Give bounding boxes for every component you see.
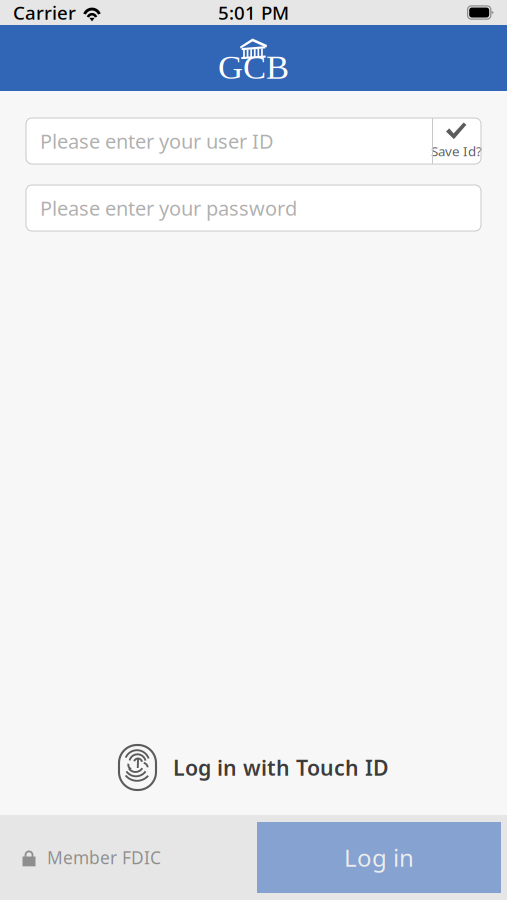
- staticText: Save Id?: [431, 142, 482, 160]
- staticText: Log in: [344, 842, 414, 873]
- staticText: GCB: [218, 48, 289, 86]
- button[interactable]: Log in: [257, 822, 501, 893]
- staticText: Member FDIC: [47, 846, 161, 869]
- staticText: Log in with Touch ID: [173, 753, 389, 782]
- button[interactable]: Log in with Touch ID: [112, 740, 395, 795]
- staticText: Carrier: [13, 0, 76, 25]
- staticText: Please enter your user ID: [40, 128, 274, 154]
- staticText: 5:01 PM: [218, 0, 289, 25]
- staticText: Please enter your password: [40, 195, 297, 221]
- button[interactable]: Save Id: [432, 118, 481, 164]
